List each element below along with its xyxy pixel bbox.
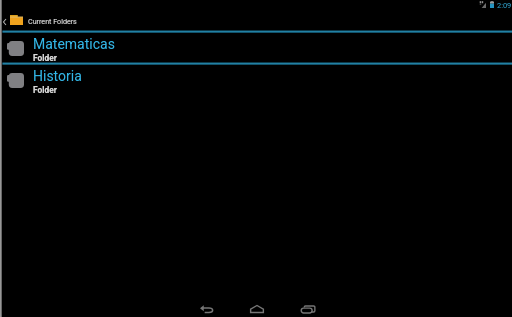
button[interactable]: Back <box>186 299 226 317</box>
button[interactable]: Navigate up <box>0 12 9 31</box>
staticText: Matematicas <box>33 36 115 52</box>
staticText: Historia <box>33 68 82 84</box>
button[interactable]: Recent apps <box>288 299 328 317</box>
button[interactable]: Matematicas <box>0 33 512 63</box>
staticText: Current Folders <box>28 17 77 25</box>
staticText: Folder <box>33 85 57 95</box>
staticText: 2:09 <box>497 1 512 10</box>
button[interactable]: Historia <box>0 65 512 95</box>
button[interactable]: Home <box>236 299 276 317</box>
staticText: Folder <box>33 53 57 63</box>
